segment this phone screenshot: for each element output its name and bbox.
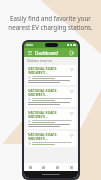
button[interactable]: Logout <box>69 50 75 56</box>
button[interactable]: Favorite <box>69 111 74 116</box>
button[interactable]: Favorite <box>69 133 74 138</box>
button[interactable]: Tab 3 <box>50 163 64 171</box>
button[interactable]: NATIONAL ROADS (MIDWEST)… <box>26 109 76 129</box>
button[interactable]: Favorite <box>69 67 74 72</box>
button[interactable]: Open navigation menu <box>27 50 33 56</box>
button[interactable]: NATIONAL ROADS (MIDWEST)… <box>26 131 76 147</box>
staticText: Stations near me <box>27 59 53 63</box>
button[interactable]: NATIONAL ROADS (MIDWEST)… <box>26 65 76 85</box>
staticText: Easily find and favorite your nearest EV… <box>0 14 101 32</box>
staticText: NATIONAL ROADS (MIDWEST)… <box>28 111 68 119</box>
staticText: NATIONAL ROADS (MIDWEST)… <box>28 89 68 97</box>
staticText: NATIONAL ROADS (MIDWEST)… <box>28 67 68 75</box>
button[interactable]: NATIONAL ROADS (MIDWEST)… <box>26 87 76 107</box>
button[interactable]: Favorite <box>69 89 74 94</box>
staticText: NATIONAL ROADS (MIDWEST)… <box>28 133 68 141</box>
button[interactable]: Tab 2 <box>37 163 50 171</box>
button[interactable]: Tab 1 <box>24 163 37 171</box>
staticText: Dashboard <box>35 50 59 56</box>
button[interactable]: Tab 4 <box>64 163 78 171</box>
